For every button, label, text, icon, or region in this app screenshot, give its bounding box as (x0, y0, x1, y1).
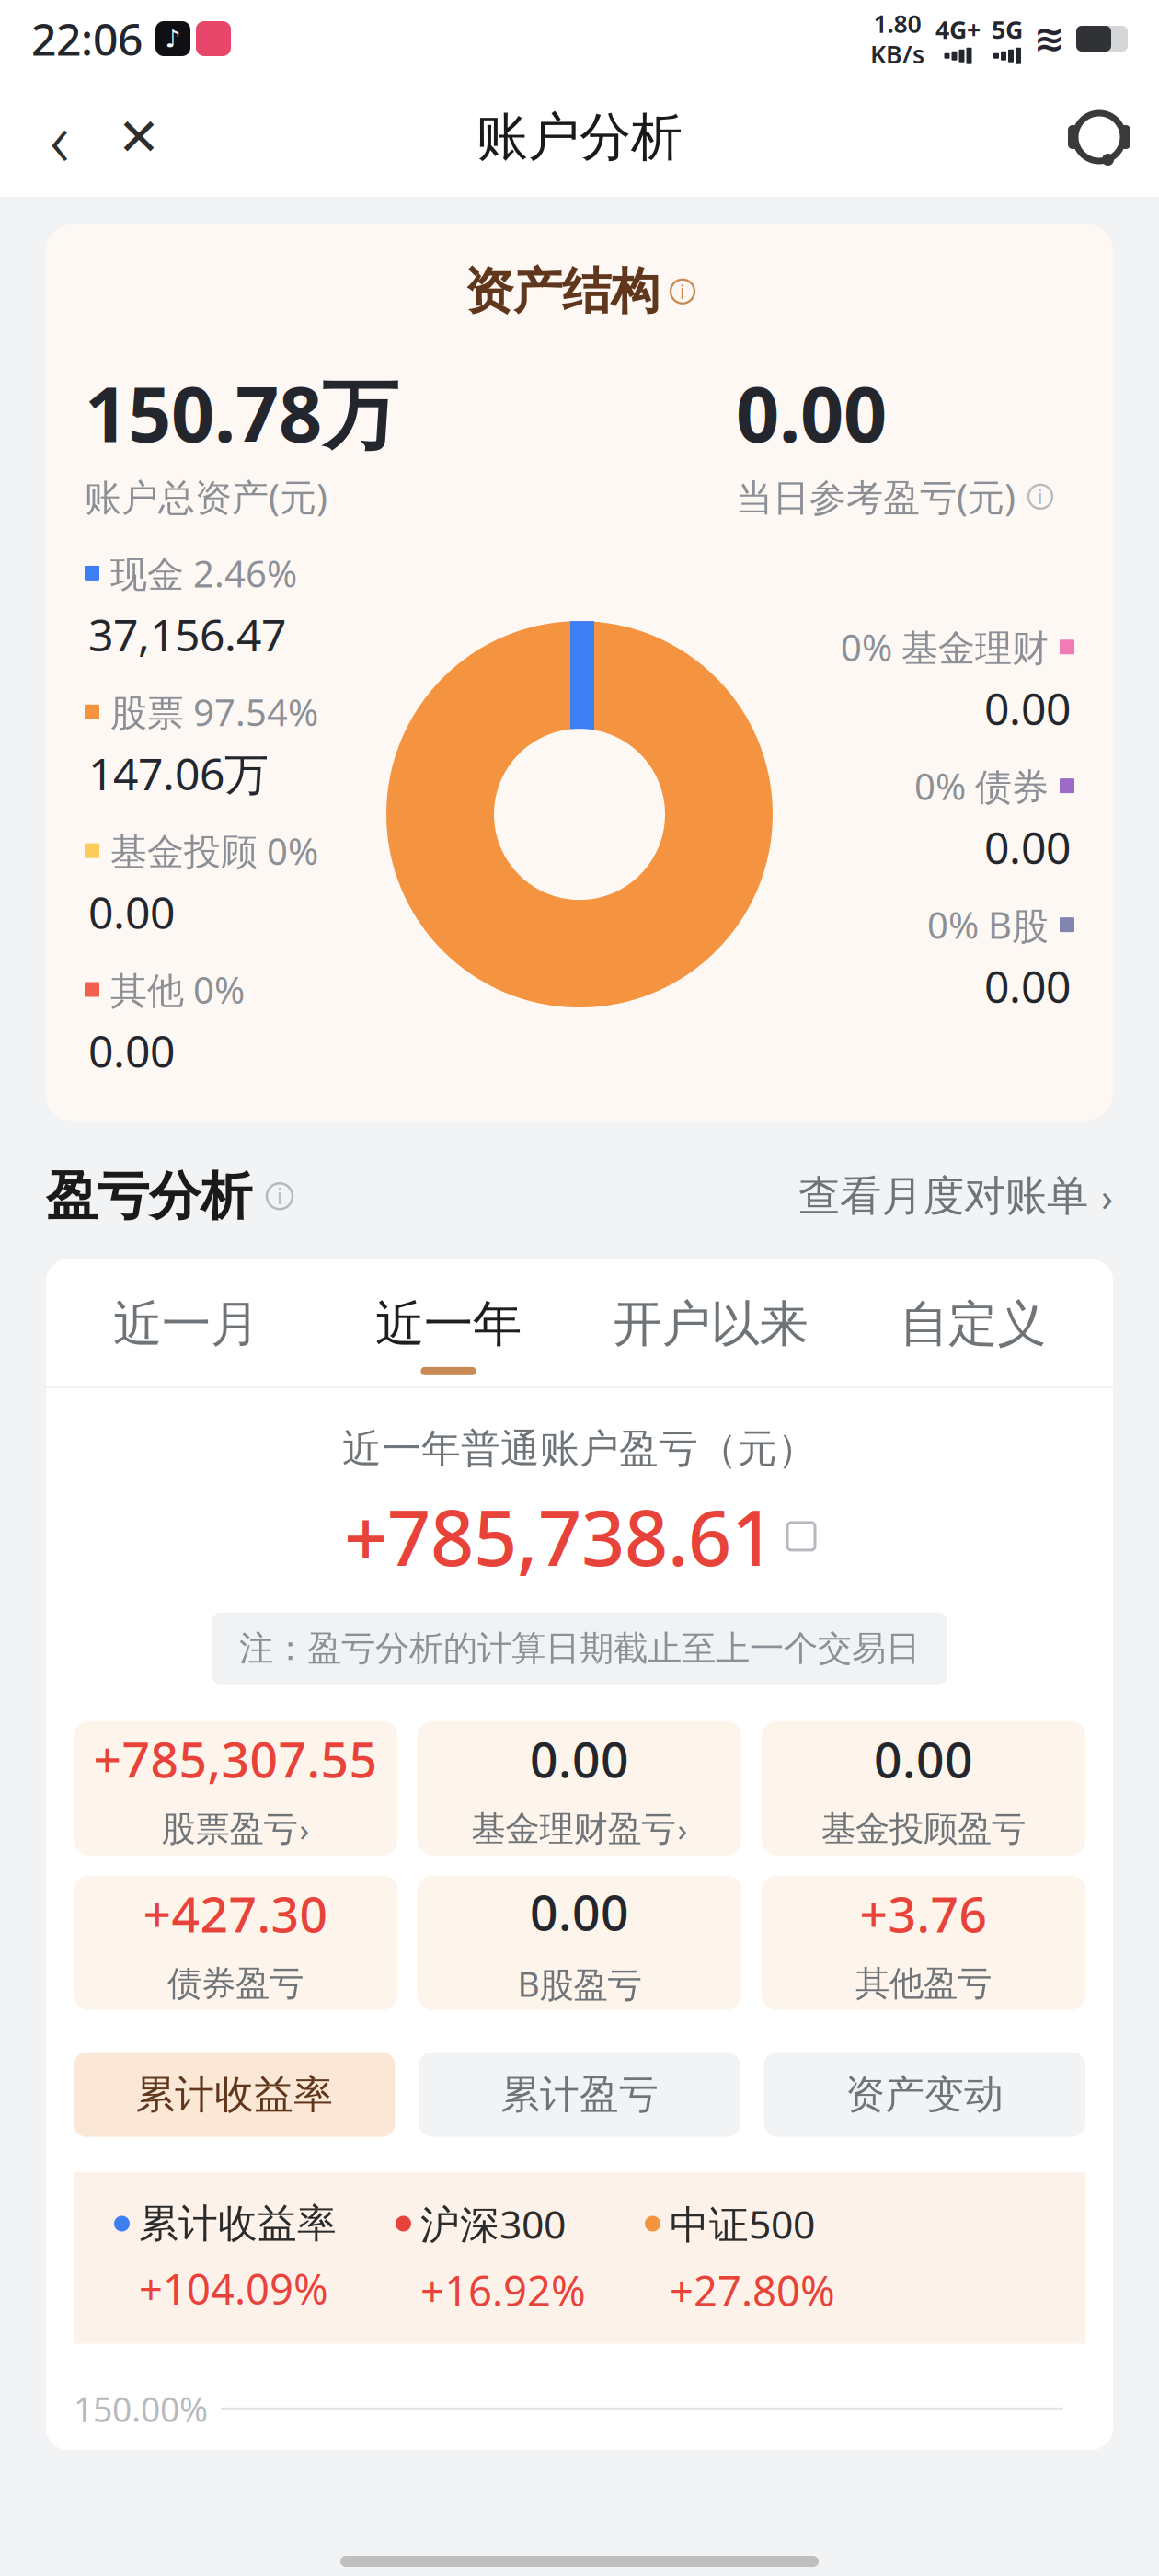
staticText: 资产结构 (465, 261, 660, 322)
button[interactable]: +785,307.55 (74, 1721, 397, 1855)
staticText: +785,307.55 (93, 1726, 378, 1791)
staticText: 累计盈亏 (500, 2070, 659, 2119)
button[interactable]: 累计收益率 (74, 2052, 395, 2137)
staticText: 查看月度对账单 (798, 1171, 1088, 1222)
staticText: › (299, 1808, 310, 1850)
staticText: 账户总资产(元) (85, 472, 327, 521)
staticText: 37,156.47 (88, 605, 286, 664)
staticText: 150.78万 (85, 362, 398, 463)
staticText: 当日参考盈亏(元) (736, 472, 1016, 521)
staticText: 150.00% (74, 2386, 208, 2432)
staticText: +104.09% (139, 2261, 328, 2316)
staticText: 0.00 (88, 882, 175, 941)
staticText: +785,738.61 (344, 1486, 775, 1587)
button[interactable]: Back (20, 98, 99, 177)
staticText: 1.80 (873, 7, 921, 40)
staticText: +27.80% (670, 2263, 835, 2318)
staticText: 累计收益率 (135, 2070, 333, 2119)
staticText: 其他 0% (110, 965, 245, 1014)
button[interactable]: 资产变动 (764, 2052, 1085, 2137)
staticText: 资产变动 (846, 2070, 1004, 2119)
staticText: 沪深300 (420, 2198, 566, 2250)
staticText: 基金投顾 0% (110, 826, 318, 875)
staticText: i (680, 278, 685, 304)
staticText: 基金投顾盈亏 (821, 1808, 1026, 1850)
button[interactable]: Detail (787, 1523, 815, 1550)
staticText: 自定义 (900, 1294, 1046, 1354)
button[interactable]: 开户以来 (579, 1283, 842, 1386)
staticText: 0.00 (736, 362, 887, 463)
button[interactable]: 0.00 (418, 1876, 741, 2010)
staticText: 147.06万 (88, 744, 269, 802)
staticText: +427.30 (143, 1881, 328, 1946)
staticText: 债券盈亏 (167, 1963, 304, 2005)
staticText: 现金 2.46% (110, 549, 297, 598)
staticText: ♪ (165, 25, 181, 53)
staticText: 0.00 (530, 1879, 629, 1944)
staticText: 近一月 (113, 1294, 259, 1354)
staticText: 累计收益率 (139, 2200, 337, 2248)
button[interactable]: 累计盈亏 (419, 2052, 740, 2137)
staticText: 其他盈亏 (855, 1963, 992, 2005)
staticText: 开户以来 (613, 1294, 808, 1354)
button[interactable]: Customer service (1060, 98, 1139, 177)
staticText: 5G (992, 13, 1023, 46)
staticText: i (277, 1182, 282, 1210)
staticText: +3.76 (860, 1881, 987, 1946)
staticText: › (1101, 1170, 1113, 1222)
staticText: 盈亏分析 (46, 1165, 252, 1228)
staticText: ‹ (50, 87, 70, 188)
staticText: 近一年 (375, 1294, 522, 1354)
staticText: 基金理财盈亏 (471, 1808, 676, 1850)
staticText: KB/s (870, 38, 924, 70)
staticText: 股票 97.54% (110, 688, 318, 736)
staticText: 0.00 (874, 1726, 973, 1791)
staticText: i (1038, 484, 1043, 510)
button[interactable]: 自定义 (842, 1283, 1104, 1386)
button[interactable]: 0.00 (418, 1721, 741, 1855)
staticText: ✕ (117, 108, 161, 166)
staticText: B股盈亏 (517, 1961, 642, 2007)
staticText: +16.92% (420, 2263, 586, 2318)
button[interactable]: +3.76 (762, 1876, 1085, 2010)
staticText: 0.00 (530, 1726, 629, 1791)
staticText: 0% 债券 (914, 761, 1049, 810)
staticText: 0.00 (88, 1021, 175, 1080)
staticText: › (677, 1808, 688, 1850)
staticText: 中证500 (670, 2198, 815, 2250)
staticText: 0% B股 (927, 900, 1049, 949)
staticText: 股票盈亏 (161, 1808, 298, 1850)
staticText: 0.00 (984, 679, 1071, 737)
staticText: 注：盈亏分析的计算日期截止至上一个交易日 (239, 1627, 920, 1670)
button[interactable]: 近一月 (55, 1283, 317, 1386)
staticText: 0% 基金理财 (841, 623, 1049, 671)
button[interactable]: 查看月度对账单 (798, 1170, 1113, 1222)
button[interactable]: 近一年 (317, 1283, 579, 1386)
staticText: 账户分析 (476, 105, 683, 169)
staticText: 0.00 (984, 818, 1071, 876)
staticText: 0.00 (984, 957, 1071, 1015)
button[interactable]: Close (99, 98, 178, 177)
button[interactable]: +427.30 (74, 1876, 397, 2010)
button[interactable]: 0.00 (762, 1721, 1085, 1855)
staticText: 4G+ (935, 13, 981, 46)
staticText: 近一年普通账户盈亏（元） (342, 1425, 817, 1473)
staticText: ≋ (1034, 18, 1065, 60)
staticText: 22:06 (31, 9, 143, 68)
